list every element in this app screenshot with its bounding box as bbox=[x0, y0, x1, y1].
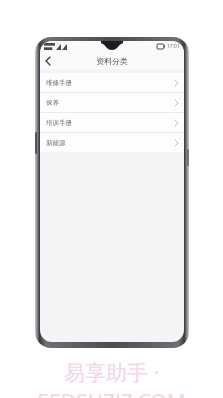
button[interactable]: 培训手册 bbox=[40, 113, 184, 132]
button[interactable]: Back bbox=[40, 53, 56, 69]
button[interactable]: 维修手册 bbox=[40, 73, 184, 92]
staticText: 新能源 bbox=[46, 139, 66, 147]
button[interactable]: 新能源 bbox=[40, 133, 184, 152]
staticText: 保养 bbox=[46, 99, 59, 107]
staticText: 易享助手 · EEDSHZJZ.COM bbox=[0, 358, 223, 398]
staticText: 维修手册 bbox=[46, 79, 72, 87]
staticText: 资料分类 bbox=[96, 56, 128, 66]
button[interactable]: 保养 bbox=[40, 93, 184, 112]
staticText: 培训手册 bbox=[46, 119, 72, 127]
staticText: 17:01 bbox=[167, 43, 180, 50]
